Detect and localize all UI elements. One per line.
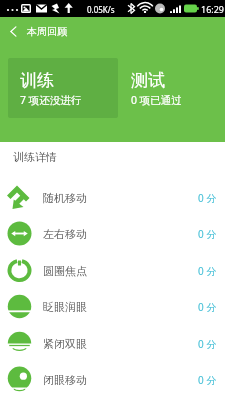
- staticText: 0 分: [198, 191, 217, 205]
- staticText: 眨眼润眼: [43, 300, 87, 314]
- staticText: 7 项还没进行: [20, 93, 82, 107]
- staticText: 左右移动: [43, 227, 87, 241]
- button[interactable]: 左右移动: [0, 215, 225, 252]
- staticText: 0.05K/s: [87, 4, 115, 15]
- staticText: 闭眼移动: [43, 373, 87, 387]
- button[interactable]: 随机移动: [0, 179, 225, 216]
- staticText: 训练详情: [13, 150, 57, 164]
- staticText: 紧闭双眼: [43, 337, 87, 351]
- staticText: 随机移动: [43, 191, 87, 205]
- button[interactable]: 闭眼移动: [0, 361, 225, 398]
- staticText: 训练: [20, 70, 54, 91]
- button[interactable]: [8, 58, 118, 118]
- staticText: 圆圈焦点: [43, 264, 87, 278]
- button[interactable]: 眨眼润眼: [0, 288, 225, 325]
- staticText: 0 分: [198, 337, 217, 351]
- staticText: 0 分: [198, 264, 217, 278]
- staticText: 0 分: [198, 300, 217, 314]
- staticText: 0 分: [198, 373, 217, 387]
- button[interactable]: 圆圈焦点: [0, 252, 225, 289]
- button[interactable]: Back: [0, 17, 27, 45]
- button[interactable]: 训练: [20, 70, 82, 107]
- staticText: 本周回顾: [27, 25, 67, 38]
- staticText: 测试: [131, 70, 165, 91]
- staticText: 16:29: [201, 3, 225, 15]
- button[interactable]: 测试: [131, 70, 182, 107]
- button[interactable]: 紧闭双眼: [0, 325, 225, 362]
- staticText: 0 项已通过: [131, 93, 182, 107]
- staticText: 0 分: [198, 227, 217, 241]
- button[interactable]: Back: [0, 17, 225, 45]
